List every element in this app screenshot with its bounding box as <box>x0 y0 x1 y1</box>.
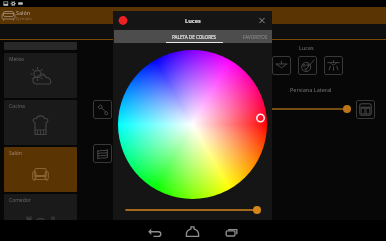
button[interactable]: Blind <box>93 144 112 163</box>
button[interactable]: Home <box>183 220 202 241</box>
staticText: Persiana Lateral <box>290 86 332 93</box>
staticText: Salón <box>16 9 31 16</box>
button[interactable]: PALETA DE COLORES <box>166 30 223 43</box>
button[interactable]: Brightness <box>125 205 261 215</box>
button[interactable]: FAVORITOS <box>238 30 272 43</box>
button[interactable]: Close <box>253 11 272 30</box>
button[interactable]: Color palette <box>298 56 317 75</box>
staticText: Meteo <box>9 56 25 63</box>
button[interactable]: Lamp <box>324 56 343 75</box>
button[interactable]: Back <box>145 220 164 241</box>
staticText: FAVORITOS <box>243 34 268 40</box>
button[interactable]: Meteo <box>4 53 77 98</box>
staticText: Luces <box>299 44 314 51</box>
button[interactable]: Ceiling light <box>272 56 291 75</box>
staticText: PALETA DE COLORES <box>172 34 217 40</box>
button[interactable]: Comedor <box>4 194 77 239</box>
staticText: Comedor <box>9 197 31 204</box>
button[interactable]: Salón <box>4 147 77 192</box>
staticText: Salón <box>9 150 22 157</box>
button[interactable]: Blind position <box>266 103 352 115</box>
staticText: Luces <box>185 17 201 25</box>
button[interactable]: Recents <box>222 220 241 241</box>
button[interactable]: Window blind <box>356 100 375 119</box>
button[interactable]: Cocina <box>4 100 77 145</box>
button[interactable]: Lamp <box>93 100 112 119</box>
staticText: Cocina <box>9 103 25 110</box>
staticText: Ejemplo <box>16 16 32 22</box>
